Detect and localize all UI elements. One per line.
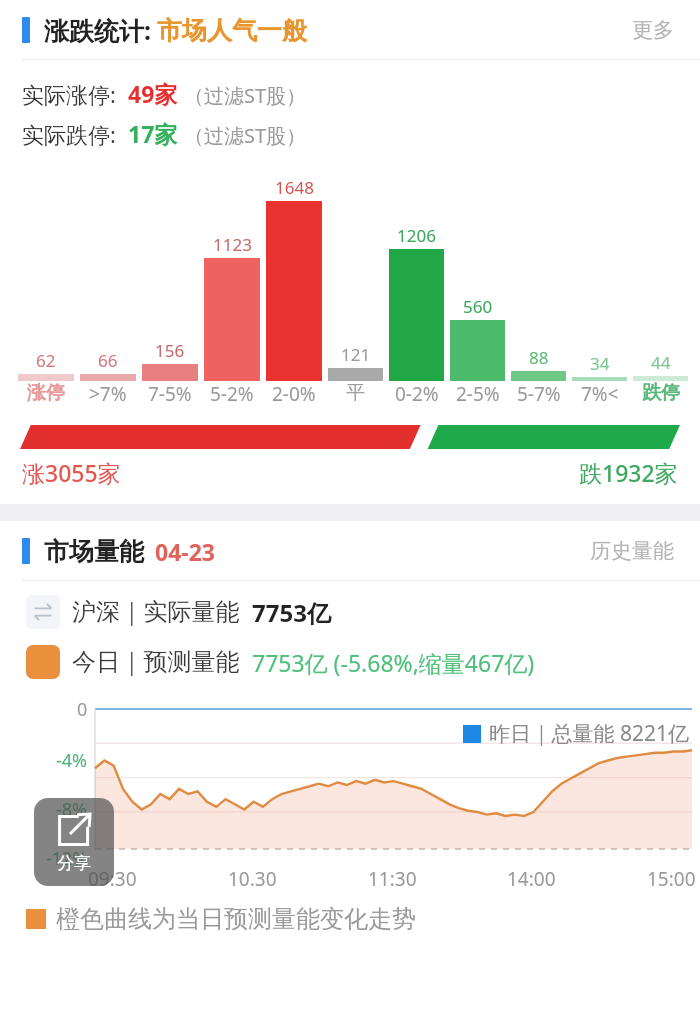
button[interactable] [20, 425, 680, 449]
staticText: 5-2% [210, 381, 254, 407]
staticText: 市场量能 [44, 536, 144, 567]
staticText: 88 [529, 346, 549, 369]
staticText: 44 [651, 351, 671, 374]
staticText: 11:30 [368, 866, 417, 892]
button[interactable]: 沪深｜实际量能 [26, 595, 700, 629]
staticText: （过滤ST股） [184, 122, 307, 149]
staticText: 1206 [397, 224, 436, 247]
staticText: >7% [89, 381, 127, 407]
staticText: 历史量能 [590, 538, 674, 564]
staticText: 涨停 [27, 381, 65, 405]
staticText: 分享 [57, 853, 91, 874]
button[interactable]: 分享 [34, 798, 114, 886]
staticText: 1123 [213, 233, 252, 256]
staticText: 0 [77, 697, 88, 722]
staticText: 昨日｜总量能 8221亿 [489, 719, 690, 748]
staticText: 7%< [581, 381, 619, 407]
staticText: 橙色曲线为当日预测量能变化走势 [56, 904, 416, 934]
staticText: 34 [590, 352, 610, 375]
staticText: 5-7% [517, 381, 561, 407]
staticText: 49家 [128, 78, 178, 109]
staticText: 17家 [128, 118, 178, 149]
staticText: 7-5% [148, 381, 192, 407]
button[interactable]: 更多 [628, 13, 678, 47]
staticText: 2-5% [456, 381, 500, 407]
staticText: 10.30 [228, 866, 277, 892]
staticText: 156 [155, 339, 185, 362]
staticText: 14:00 [507, 866, 556, 892]
staticText: 实际跌停: [22, 119, 116, 149]
staticText: 62 [36, 349, 56, 372]
staticText: -8% [56, 797, 88, 822]
staticText: 跌1932家 [579, 457, 678, 488]
staticText: 7753亿 (-5.68%,缩量467亿) [252, 647, 535, 678]
staticText: （过滤ST股） [184, 82, 307, 109]
staticText: 560 [463, 295, 493, 318]
staticText: -12% [46, 846, 88, 871]
staticText: 1648 [275, 176, 314, 199]
staticText: 涨跌统计: [44, 13, 152, 47]
staticText: 实际涨停: [22, 79, 116, 109]
staticText: 今日｜预测量能 [72, 647, 240, 677]
button[interactable]: 今日｜预测量能 [26, 645, 700, 679]
staticText: 跌停 [642, 381, 680, 405]
staticText: 04-23 [149, 536, 215, 567]
staticText: 更多 [632, 17, 674, 43]
staticText: 涨3055家 [22, 457, 121, 488]
staticText: 2-0% [272, 381, 316, 407]
staticText: -4% [56, 748, 88, 773]
staticText: 平 [346, 381, 365, 405]
staticText: 0-2% [395, 381, 439, 407]
staticText: 市场人气一般 [157, 15, 307, 46]
staticText: 121 [341, 343, 371, 366]
staticText: 15:00 [647, 866, 696, 892]
staticText: 7753亿 [252, 596, 331, 629]
staticText: 09:30 [88, 866, 137, 892]
staticText: 沪深｜实际量能 [72, 597, 240, 627]
button[interactable]: 历史量能 [586, 534, 678, 568]
staticText: 66 [98, 349, 118, 372]
